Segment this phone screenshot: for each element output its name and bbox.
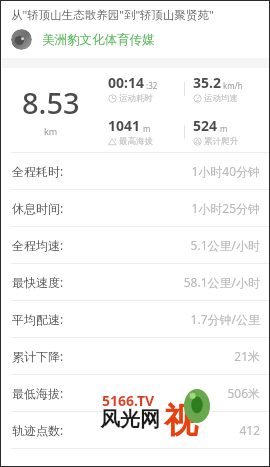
- staticText: 风光网: [100, 407, 160, 432]
- staticText: 最高海拔: [119, 136, 153, 147]
- button[interactable]: 平均配速:: [2, 301, 269, 337]
- staticText: 35.2: [193, 73, 221, 92]
- staticText: m: [143, 123, 151, 134]
- button[interactable]: 最低海拔:: [2, 375, 269, 411]
- staticText: 1.7分钟/公里: [190, 311, 260, 327]
- staticText: 412: [239, 422, 260, 438]
- staticText: 5166.TV: [102, 391, 155, 410]
- button[interactable]: 休息时间:: [2, 190, 269, 226]
- staticText: 5.1公里/小时: [190, 237, 260, 253]
- button[interactable]: 美洲豹文化体育传媒: [2, 29, 269, 50]
- staticText: 累计爬升: [204, 136, 238, 147]
- staticText: :32: [146, 80, 158, 91]
- staticText: 00:14: [108, 73, 144, 92]
- staticText: 休息时间:: [12, 200, 64, 216]
- button[interactable]: 轨迹点数:: [2, 412, 269, 448]
- staticText: 1小时40分钟: [191, 163, 260, 179]
- staticText: 最低海拔:: [12, 385, 64, 401]
- staticText: 美洲豹文化体育传媒: [42, 32, 155, 48]
- staticText: 8.53: [22, 83, 80, 122]
- staticText: 1小时25分钟: [191, 200, 260, 216]
- staticText: 1041: [108, 116, 141, 135]
- staticText: 58.1公里/小时: [183, 274, 260, 290]
- staticText: 累计下降:: [12, 348, 64, 364]
- staticText: 运动均速: [204, 93, 238, 104]
- staticText: 524: [193, 116, 218, 135]
- staticText: 全程耗时:: [12, 163, 64, 179]
- staticText: 轨迹点数:: [12, 422, 64, 438]
- staticText: km/h: [223, 80, 243, 91]
- staticText: 平均配速:: [12, 311, 64, 327]
- staticText: 视: [164, 399, 198, 442]
- staticText: 从"轿顶山生态散养园"到"轿顶山聚贤苑": [11, 7, 214, 23]
- staticText: km: [44, 125, 58, 137]
- staticText: 506米: [227, 385, 260, 401]
- staticText: 最快速度:: [12, 274, 64, 290]
- button[interactable]: 累计下降:: [2, 338, 269, 374]
- button[interactable]: 全程耗时:: [2, 153, 269, 189]
- staticText: 21米: [234, 348, 260, 364]
- staticText: 全程均速:: [12, 237, 64, 253]
- staticText: 运动耗时: [119, 93, 153, 104]
- staticText: m: [220, 123, 228, 134]
- button[interactable]: 全程均速:: [2, 227, 269, 263]
- button[interactable]: 最快速度:: [2, 264, 269, 300]
